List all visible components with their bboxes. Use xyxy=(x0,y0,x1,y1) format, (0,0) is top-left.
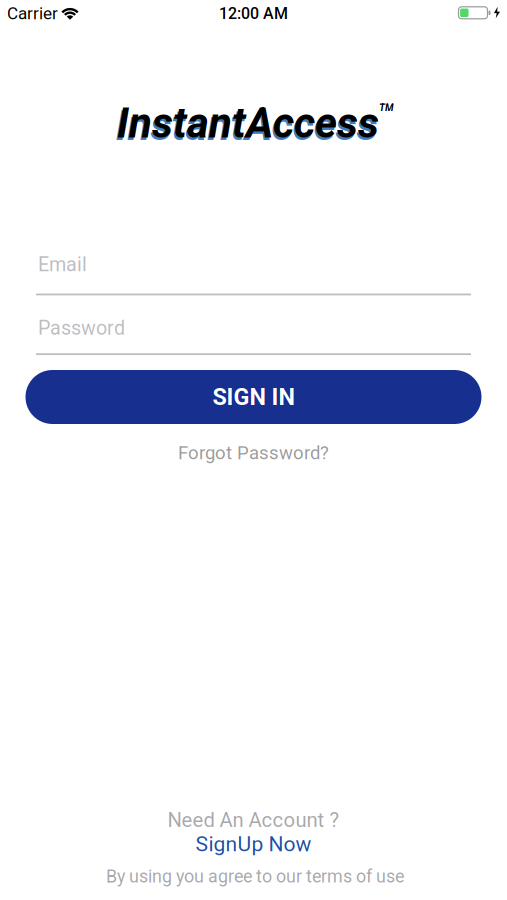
button[interactable]: SIGN IN xyxy=(25,370,481,424)
button[interactable]: Password xyxy=(36,316,471,355)
staticText: InstantAccess xyxy=(115,101,377,150)
staticText: SIGN IN xyxy=(212,383,294,411)
button[interactable]: Email xyxy=(36,253,471,295)
staticText: Need An Account ? xyxy=(167,808,339,832)
staticText: 12:00 AM xyxy=(219,4,288,23)
button[interactable]: SignUp Now xyxy=(195,832,311,856)
button[interactable]: Forgot Password? xyxy=(178,442,329,464)
staticText: Forgot Password? xyxy=(178,442,329,464)
staticText: Password xyxy=(38,316,125,340)
staticText: InstantAccess xyxy=(117,98,379,148)
staticText: TM xyxy=(379,102,393,114)
staticText: SignUp Now xyxy=(195,832,311,856)
staticText: Email xyxy=(38,253,87,276)
staticText: Carrier xyxy=(7,3,58,23)
staticText: By using you agree to our terms of use xyxy=(106,866,404,887)
